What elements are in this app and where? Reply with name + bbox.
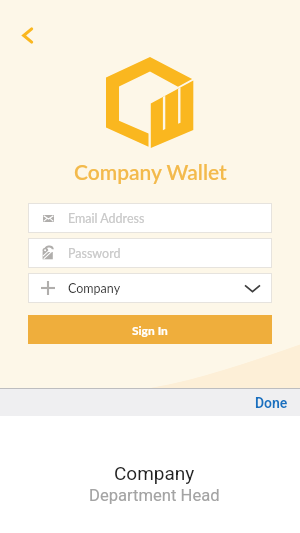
button[interactable]: Done: [243, 391, 300, 415]
staticText: Company: [114, 462, 195, 484]
staticText: Password: [68, 246, 121, 261]
staticText: Sign In: [132, 323, 168, 337]
button[interactable]: Back: [14, 22, 40, 48]
staticText: Done: [255, 395, 288, 411]
button[interactable]: Company: [28, 273, 272, 303]
button[interactable]: Sign In: [28, 315, 272, 344]
staticText: Company Wallet: [74, 159, 227, 184]
staticText: Department Head: [89, 486, 220, 505]
button[interactable]: Company: [4, 462, 300, 484]
staticText: Company: [68, 281, 121, 296]
button[interactable]: Department Head: [4, 484, 300, 506]
button[interactable]: Email Address: [28, 203, 272, 233]
button[interactable]: Password: [28, 238, 272, 268]
staticText: Email Address: [68, 211, 145, 226]
